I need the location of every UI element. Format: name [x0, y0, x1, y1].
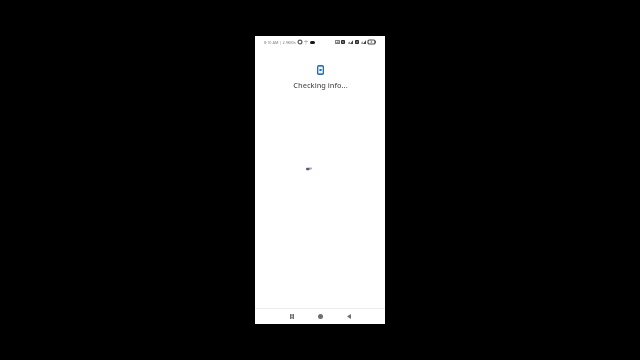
button[interactable]: Back [342, 309, 356, 323]
button[interactable]: Recent apps [285, 309, 299, 323]
staticText: 8:10 AM | 2.9KB/s [264, 40, 296, 45]
button[interactable]: Home [313, 309, 327, 323]
staticText: Checking info... [293, 80, 348, 90]
